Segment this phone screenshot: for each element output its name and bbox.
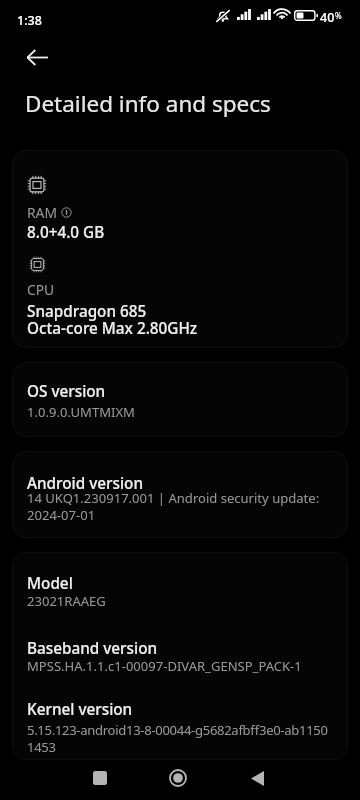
staticText: Snapdragon 685 [27, 301, 147, 322]
staticText: MPSS.HA.1.1.c1-00097-DIVAR_GENSP_PACK-1 [27, 657, 302, 675]
staticText: 14 UKQ1.230917.001 | Android security up… [27, 489, 327, 524]
staticText: 8.0+4.0 GB [27, 222, 105, 243]
staticText: RAM [27, 203, 57, 222]
button[interactable]: Back [13, 33, 61, 81]
staticText: 1.0.9.0.UMTMIXM [27, 403, 135, 421]
staticText: Android version [27, 473, 144, 494]
button[interactable]: Recents [76, 756, 124, 800]
staticText: Model [27, 573, 73, 594]
button[interactable]: Model [12, 552, 348, 760]
staticText: Detailed info and specs [25, 88, 271, 119]
staticText: 1:38 [17, 12, 42, 29]
staticText: 5.15.123-android13-8-00044-g5682afbff3e0… [27, 721, 328, 756]
button[interactable]: Back [233, 756, 281, 800]
staticText: 23021RAAEG [27, 592, 106, 610]
staticText: % [335, 10, 342, 21]
button[interactable]: Android version [12, 451, 348, 538]
staticText: CPU [27, 280, 55, 299]
button[interactable]: RAM [12, 150, 348, 348]
staticText: OS version [27, 381, 106, 402]
button[interactable]: OS version [12, 362, 348, 437]
staticText: Baseband version [27, 638, 158, 659]
staticText: 40 [320, 9, 335, 26]
staticText: Octa-core Max 2.80GHz [27, 318, 198, 339]
button[interactable]: Home [154, 756, 202, 800]
staticText: Kernel version [27, 699, 133, 720]
